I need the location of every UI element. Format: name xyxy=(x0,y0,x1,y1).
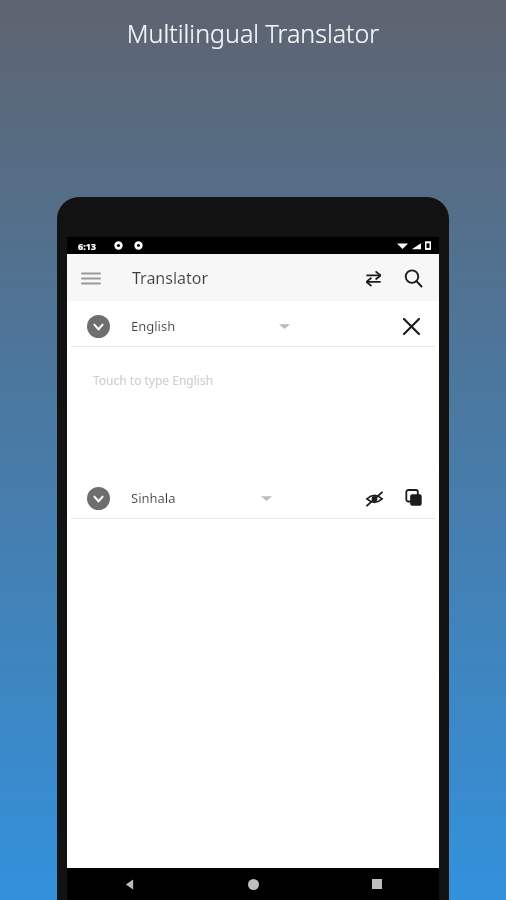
button[interactable]: Menu xyxy=(73,260,109,296)
staticText: English xyxy=(131,317,176,335)
button[interactable]: Copy translation xyxy=(397,481,431,515)
button[interactable]: Expand language xyxy=(87,315,110,338)
staticText: 6:13 xyxy=(78,240,96,252)
staticText: Translator xyxy=(132,267,209,289)
button[interactable]: Back xyxy=(67,868,191,900)
button[interactable]: Expand language xyxy=(71,478,435,518)
button[interactable]: Swap languages xyxy=(353,258,393,298)
button[interactable]: Recent apps xyxy=(315,868,439,900)
button[interactable]: Clear text xyxy=(393,308,429,344)
staticText: Touch to type English xyxy=(93,372,214,388)
staticText: Multilingual Translator xyxy=(0,16,506,50)
button[interactable]: Expand language xyxy=(87,487,110,510)
button[interactable]: Home xyxy=(191,868,315,900)
button[interactable]: Expand language xyxy=(71,306,435,346)
button[interactable]: Hide translation xyxy=(357,481,391,515)
button[interactable]: Touch to type English xyxy=(71,347,435,472)
button[interactable]: Search xyxy=(393,258,433,298)
staticText: Sinhala xyxy=(131,489,176,507)
